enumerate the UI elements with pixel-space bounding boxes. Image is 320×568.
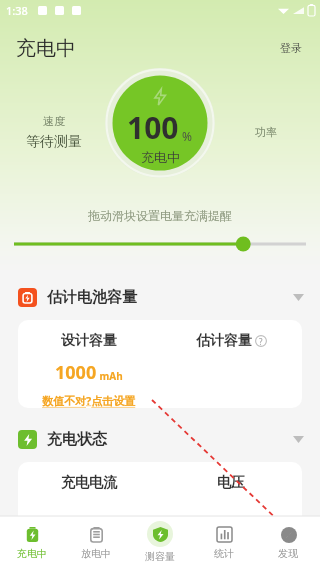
staticText: 估计容量	[196, 332, 252, 350]
button[interactable]: 充电电流	[18, 462, 302, 522]
staticText: 电压	[217, 474, 245, 492]
button[interactable]: 统计	[192, 516, 256, 568]
staticText: 设计容量	[61, 332, 117, 350]
staticText: 充电中	[17, 547, 47, 560]
staticText: 放电中	[81, 547, 111, 560]
button[interactable]: 估计电池容量	[0, 280, 320, 314]
staticText: 1000	[55, 360, 97, 385]
staticText: ?	[259, 336, 263, 347]
staticText: 充电电流	[61, 474, 117, 492]
staticText: 速度	[43, 114, 65, 128]
button[interactable]: 登录	[276, 38, 306, 58]
staticText: 等待测量	[26, 133, 82, 151]
staticText: 100	[127, 107, 179, 148]
button[interactable]: 充电状态	[0, 422, 320, 456]
button[interactable]: 放电中	[64, 516, 128, 568]
button[interactable]: 帮助	[255, 335, 267, 347]
staticText: 充电中	[16, 36, 76, 61]
button[interactable]: 测容量	[128, 516, 192, 568]
staticText: 发现	[278, 547, 298, 560]
staticText: 测容量	[145, 550, 175, 563]
staticText: 充电中	[141, 149, 180, 165]
staticText: %	[179, 128, 193, 144]
button[interactable]: 数值不对?点击设置	[42, 393, 136, 408]
staticText: 统计	[214, 547, 234, 560]
staticText: 功率	[255, 125, 277, 139]
staticText: 数值不对?点击设置	[42, 393, 136, 408]
button[interactable]: 电量提醒滑块	[14, 235, 306, 253]
staticText: 拖动滑块设置电量充满提醒	[88, 208, 232, 223]
staticText: 登录	[280, 41, 302, 55]
button[interactable]: 发现	[256, 516, 320, 568]
staticText: 估计电池容量	[47, 288, 137, 307]
staticText: mAh	[97, 369, 123, 383]
button[interactable]: 电量 100%	[105, 68, 215, 178]
staticText: 1:38	[6, 3, 28, 18]
button[interactable]: 充电中	[0, 516, 64, 568]
button[interactable]: 设计容量	[18, 320, 302, 408]
staticText: 充电状态	[47, 430, 107, 449]
